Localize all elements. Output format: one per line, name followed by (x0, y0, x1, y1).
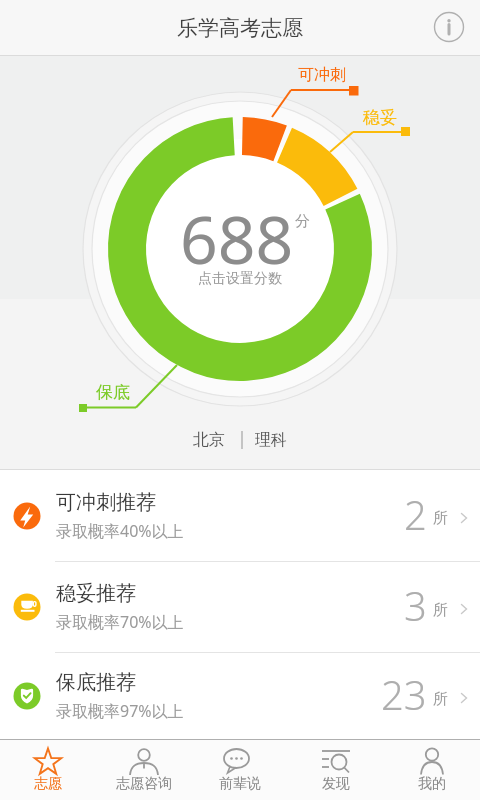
button[interactable] (432, 10, 466, 44)
staticText: 发现 (322, 775, 350, 793)
staticText: 我的 (418, 775, 446, 793)
button[interactable]: 稳妥推荐 (0, 562, 480, 652)
button[interactable]: 北京 (0, 430, 480, 450)
staticText: 录取概率40%以上 (56, 520, 184, 542)
button[interactable]: 688 (137, 190, 337, 285)
staticText: 点击设置分数 (198, 270, 282, 288)
staticText: 2 (404, 487, 427, 541)
staticText: 所 (433, 690, 448, 709)
staticText: 3 (404, 578, 427, 632)
staticText: 可冲刺推荐 (56, 490, 156, 515)
staticText: 所 (433, 601, 448, 620)
staticText: 保底推荐 (56, 670, 136, 695)
staticText: 志愿 (34, 775, 62, 793)
staticText: 前辈说 (219, 775, 261, 793)
staticText: 志愿咨询 (116, 775, 172, 793)
button[interactable]: 我的 (384, 740, 480, 800)
staticText: 可冲刺 (298, 65, 346, 85)
button[interactable]: 发现 (288, 740, 384, 800)
staticText: 688 (180, 193, 294, 283)
button[interactable]: 保底推荐 (0, 653, 480, 739)
staticText: 分 (295, 212, 310, 231)
button[interactable]: 志愿咨询 (96, 740, 192, 800)
staticText: 稳妥 (363, 107, 397, 128)
staticText: 录取概率97%以上 (56, 700, 184, 722)
staticText: 乐学高考志愿 (177, 15, 303, 41)
button[interactable]: 志愿 (0, 740, 96, 800)
button[interactable]: 前辈说 (192, 740, 288, 800)
staticText: 稳妥推荐 (56, 581, 136, 606)
staticText: 所 (433, 509, 448, 528)
staticText: 录取概率70%以上 (56, 611, 184, 633)
staticText: 保底 (96, 382, 130, 403)
button[interactable]: 可冲刺推荐 (0, 470, 480, 561)
staticText: 理科 (255, 430, 287, 450)
staticText: 北京 (193, 430, 225, 450)
staticText: 23 (381, 667, 427, 721)
